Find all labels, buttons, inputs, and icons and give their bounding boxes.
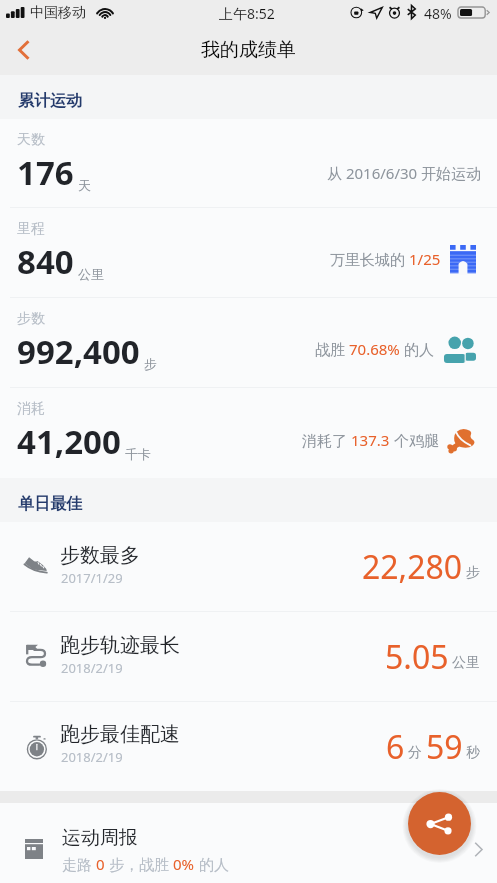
staticText: 1/25 — [409, 249, 441, 269]
staticText: 步数最多 — [60, 543, 140, 568]
staticText: 走路 — [62, 854, 96, 874]
staticText: 我的成绩单 — [201, 38, 296, 62]
button[interactable]: Back — [0, 24, 48, 75]
staticText: 从 2016/6/30 开始运动 — [327, 163, 482, 183]
staticText: 跑步轨迹最长 — [60, 633, 180, 658]
staticText: 840 — [17, 239, 74, 284]
staticText: 步 — [144, 356, 157, 372]
staticText: 5.05 — [385, 635, 449, 679]
staticText: 0% — [173, 854, 195, 874]
button[interactable]: 步数 — [0, 298, 497, 388]
button[interactable]: 运动周报 — [0, 803, 497, 883]
staticText: 的人 — [400, 339, 434, 359]
staticText: 单日最佳 — [18, 494, 82, 514]
button[interactable]: 跑步最佳配速 — [0, 702, 497, 791]
staticText: 22,280 — [362, 545, 463, 589]
staticText: 59 — [426, 725, 463, 769]
staticText: 992,400 — [17, 329, 140, 374]
staticText: 运动周报 — [62, 826, 138, 850]
staticText: 步 — [466, 564, 480, 582]
staticText: 137.3 — [351, 430, 390, 450]
button[interactable]: 步数最多 — [0, 522, 497, 612]
staticText: 跑步最佳配速 — [60, 722, 180, 747]
staticText: 的人 — [195, 854, 229, 874]
staticText: 48% — [424, 4, 452, 23]
staticText: 里程 — [17, 220, 45, 238]
staticText: 0 — [96, 854, 105, 874]
button[interactable]: 里程 — [0, 208, 497, 298]
staticText: 天 — [78, 177, 91, 193]
button[interactable]: 消耗 — [0, 388, 497, 478]
staticText: 2018/2/19 — [61, 748, 123, 766]
staticText: 步，战胜 — [105, 854, 173, 874]
staticText: 2018/2/19 — [61, 659, 123, 677]
staticText: 消耗了 — [302, 430, 351, 450]
staticText: 战胜 — [315, 339, 349, 359]
staticText: 41,200 — [17, 419, 121, 464]
staticText: 千卡 — [125, 446, 151, 462]
staticText: 消耗 — [17, 400, 45, 418]
staticText: 累计运动 — [18, 91, 82, 111]
button[interactable]: Share — [408, 792, 471, 855]
staticText: 秒 — [466, 744, 480, 762]
staticText: 上午8:52 — [219, 4, 275, 23]
staticText: 公里 — [78, 266, 104, 282]
staticText: 步数 — [17, 310, 45, 328]
staticText: 中国移动 — [30, 4, 86, 22]
staticText: 天数 — [17, 131, 45, 149]
staticText: 公里 — [452, 654, 480, 672]
staticText: 个鸡腿 — [390, 430, 439, 450]
staticText: 6 — [386, 725, 405, 769]
staticText: 176 — [17, 150, 74, 195]
staticText: 2017/1/29 — [61, 569, 123, 587]
staticText: 万里长城的 — [330, 249, 409, 269]
staticText: 70.68% — [349, 339, 400, 359]
button[interactable]: 跑步轨迹最长 — [0, 612, 497, 702]
staticText: 分 — [408, 744, 422, 762]
button[interactable]: 天数 — [0, 119, 497, 208]
